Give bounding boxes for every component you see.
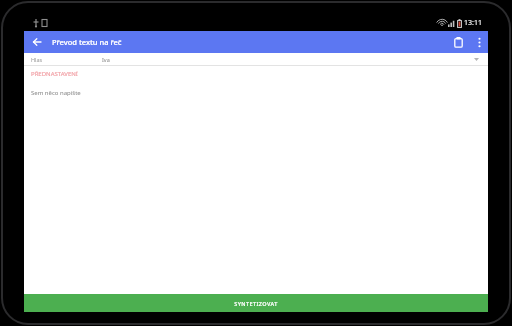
button[interactable]: Paste from clipboard <box>446 31 470 53</box>
button[interactable]: Hlas <box>24 53 488 65</box>
staticText: Sem něco napište <box>31 89 81 97</box>
button[interactable]: More options <box>470 31 488 53</box>
staticText: Iva <box>102 56 110 63</box>
staticText: Převod textu na řeč <box>52 37 122 47</box>
staticText: SYNTETIZOVAT <box>234 300 278 307</box>
button[interactable]: Back <box>24 31 50 53</box>
staticText: 13:11 <box>464 18 482 28</box>
staticText: PŘEDNASTAVENÍ <box>31 70 78 78</box>
staticText: Hlas <box>31 56 43 63</box>
button[interactable]: SYNTETIZOVAT <box>24 294 488 312</box>
